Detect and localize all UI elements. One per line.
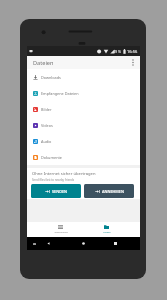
button[interactable]: Keyboard <box>31 240 38 247</box>
button[interactable]: More options <box>127 56 139 69</box>
button[interactable]: Empfangene Dateien <box>27 85 140 101</box>
button[interactable]: Back <box>45 240 52 247</box>
staticText: Dokumente <box>41 155 62 160</box>
button[interactable]: Home <box>80 240 87 247</box>
staticText: 49 % <box>113 49 122 54</box>
staticText: Audio <box>41 139 52 144</box>
button[interactable]: SENDEN <box>31 184 81 198</box>
button[interactable]: Dateien <box>95 222 118 237</box>
staticText: ANNEHMEN <box>102 189 124 194</box>
staticText: Empfangene Dateien <box>41 91 79 96</box>
staticText: Bilder <box>41 107 52 112</box>
staticText: Dateien <box>33 59 54 67</box>
staticText: Videos <box>41 123 53 128</box>
button[interactable]: Recent apps <box>112 240 119 247</box>
staticText: 16:56 <box>127 49 138 54</box>
staticText: Send files fast to nearby friends <box>32 178 75 182</box>
button[interactable]: Speicherplatz <box>49 222 72 237</box>
staticText: Dateien <box>103 231 111 234</box>
button[interactable]: Dokumente <box>27 149 140 165</box>
staticText: Downloads <box>41 75 61 80</box>
staticText: Ohne Internet sicher übertragen <box>32 171 96 177</box>
staticText: Speicherplatz <box>54 231 68 234</box>
button[interactable]: Downloads <box>27 69 140 85</box>
staticText: SENDEN <box>52 189 67 194</box>
button[interactable]: ANNEHMEN <box>84 184 134 198</box>
button[interactable]: Audio <box>27 133 140 149</box>
button[interactable]: Bilder <box>27 101 140 117</box>
button[interactable]: Videos <box>27 117 140 133</box>
